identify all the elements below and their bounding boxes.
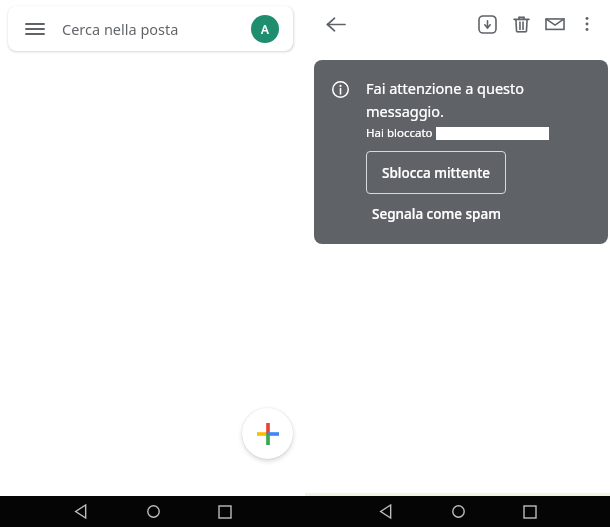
- button[interactable]: Back: [319, 8, 351, 40]
- button[interactable]: More options: [572, 9, 602, 39]
- button[interactable]: Menu: [22, 16, 48, 42]
- button[interactable]: Compose: [242, 408, 293, 459]
- button[interactable]: Account: [251, 15, 279, 43]
- button[interactable]: Home: [130, 496, 176, 527]
- button[interactable]: Recents: [202, 496, 248, 527]
- staticText: Sblocca mittente: [382, 164, 491, 182]
- staticText: A: [261, 21, 269, 37]
- button[interactable]: Home: [435, 496, 481, 527]
- button[interactable]: Menu: [8, 6, 293, 51]
- staticText: Hai bloccato: [366, 125, 433, 141]
- button[interactable]: Sblocca mittente: [366, 151, 506, 194]
- staticText: Cerca nella posta: [62, 19, 251, 39]
- button[interactable]: Delete: [504, 7, 538, 41]
- button[interactable]: Archive: [470, 7, 504, 41]
- staticText: messaggio.: [366, 101, 444, 121]
- button[interactable]: Back: [363, 496, 409, 527]
- staticText: Fai attenzione a questo: [366, 78, 525, 98]
- button[interactable]: Back: [58, 496, 104, 527]
- button[interactable]: Mark as unread: [538, 7, 572, 41]
- staticText: Segnala come spam: [372, 205, 501, 223]
- button[interactable]: Segnala come spam: [366, 203, 506, 225]
- button[interactable]: Recents: [507, 496, 553, 527]
